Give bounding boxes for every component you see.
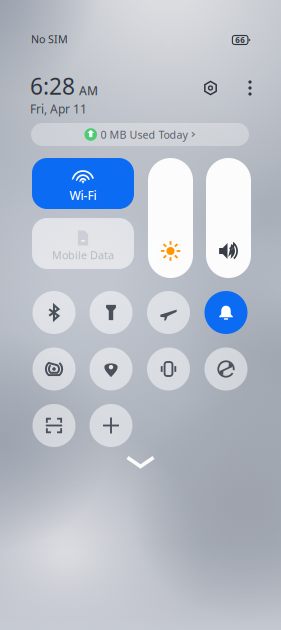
staticText: Wi-Fi [69, 187, 96, 203]
staticText: Mobile Data [52, 248, 114, 262]
button[interactable]: Sync [204, 347, 247, 390]
button[interactable]: Flashlight [89, 291, 132, 334]
staticText: 6:28 [30, 71, 75, 101]
button[interactable]: Settings [197, 75, 223, 101]
button[interactable]: Add control [89, 404, 132, 447]
button[interactable]: 0 MB Used Today [31, 123, 249, 146]
button[interactable]: Wi-Fi [32, 158, 134, 209]
staticText: 66 [235, 35, 245, 45]
button[interactable]: Hotspot [32, 347, 75, 390]
staticText: Fri, Apr 11 [30, 101, 87, 117]
staticText: AM [79, 83, 98, 99]
staticText: 0 MB Used Today [101, 127, 188, 142]
button[interactable]: Location [89, 347, 132, 390]
button[interactable]: Vibrate [147, 347, 190, 390]
button[interactable]: Mobile Data [32, 218, 134, 269]
button[interactable]: Ring mode [204, 291, 247, 334]
staticText: No SIM [31, 32, 68, 46]
button[interactable]: Airplane mode [147, 291, 190, 334]
button[interactable]: Scan QR code [32, 404, 75, 447]
button[interactable]: Brightness [148, 158, 193, 278]
button[interactable]: More options [239, 75, 261, 101]
button[interactable]: Volume [206, 158, 251, 278]
button[interactable]: Bluetooth [32, 291, 75, 334]
